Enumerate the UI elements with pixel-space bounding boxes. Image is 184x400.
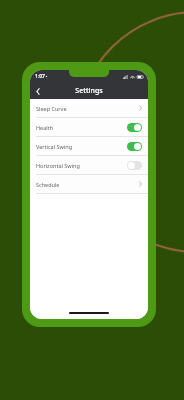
staticText: Settings	[75, 86, 103, 96]
button[interactable]: Back	[30, 83, 46, 99]
button[interactable]: Sleep Curve	[30, 99, 148, 117]
button[interactable]: Vertical Swing	[30, 137, 148, 155]
staticText: 1:07	[35, 73, 45, 80]
button[interactable]: Schedule	[30, 175, 148, 193]
staticText: Health	[36, 124, 127, 131]
button[interactable]: Horizontal Swing	[30, 156, 148, 174]
button[interactable]: Health	[30, 118, 148, 136]
staticText: Horizontal Swing	[36, 162, 127, 169]
staticText: Vertical Swing	[36, 143, 127, 150]
staticText: Schedule	[36, 181, 139, 188]
staticText: Sleep Curve	[36, 105, 139, 112]
